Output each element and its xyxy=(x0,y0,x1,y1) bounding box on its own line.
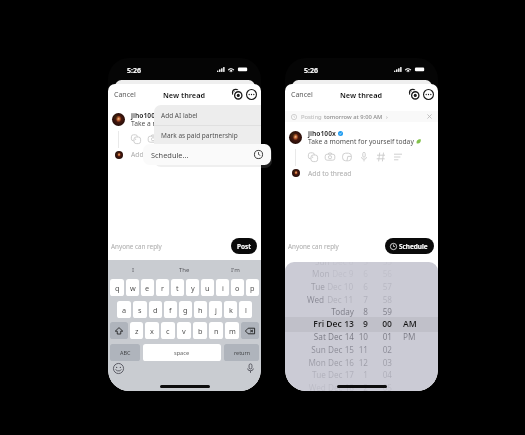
button[interactable]: Audience xyxy=(231,88,244,101)
button[interactable]: Add photo xyxy=(131,134,141,144)
button[interactable]: Mon Dec 16 xyxy=(285,356,438,368)
staticText: Dec 9 xyxy=(330,268,354,279)
button[interactable]: Fri Dec 13 xyxy=(285,318,438,330)
button[interactable]: w xyxy=(126,279,139,296)
button[interactable]: I xyxy=(108,260,159,279)
button[interactable]: Add AI label xyxy=(154,105,261,125)
staticText: e xyxy=(145,283,150,293)
staticText: New thread xyxy=(340,90,383,100)
button[interactable]: Backspace xyxy=(241,322,259,339)
button[interactable]: GIF xyxy=(342,152,352,162)
button[interactable]: i xyxy=(216,279,229,296)
button[interactable]: GIF xyxy=(165,134,175,144)
staticText: Mon Dec 16 xyxy=(285,357,354,368)
staticText: 10 xyxy=(285,331,368,342)
button[interactable]: Today xyxy=(285,305,438,317)
button[interactable]: Poll xyxy=(216,134,226,144)
button[interactable]: Tue xyxy=(285,280,438,292)
staticText: 5:26 xyxy=(304,66,318,76)
button[interactable]: Add tag xyxy=(199,134,209,144)
button[interactable]: Post xyxy=(231,238,257,254)
staticText: w xyxy=(130,283,136,293)
staticText: x xyxy=(150,326,154,336)
button[interactable]: m xyxy=(225,322,239,339)
button[interactable]: Voice note xyxy=(359,152,369,162)
button[interactable]: More options xyxy=(422,88,435,101)
staticText: The xyxy=(179,266,190,274)
button[interactable]: v xyxy=(177,322,191,339)
button[interactable]: Wed xyxy=(285,293,438,305)
staticText: 05 xyxy=(285,382,392,391)
button[interactable]: Emoji keyboard xyxy=(113,363,124,374)
staticText: Post xyxy=(237,242,251,251)
button[interactable]: l xyxy=(239,301,252,318)
staticText: h xyxy=(198,305,203,315)
button[interactable]: d xyxy=(149,301,162,318)
button[interactable]: Mark as paid partnership xyxy=(154,125,261,145)
button[interactable]: ABC xyxy=(110,344,140,361)
button[interactable]: Tue Dec 17 xyxy=(285,368,438,380)
button[interactable]: Dictation xyxy=(245,363,256,374)
button[interactable]: t xyxy=(171,279,184,296)
staticText: 6 xyxy=(285,281,368,292)
staticText: Dec 11 xyxy=(325,294,354,305)
button[interactable]: j xyxy=(209,301,222,318)
button[interactable]: n xyxy=(209,322,223,339)
button[interactable]: Cancel xyxy=(285,88,318,102)
button[interactable]: return xyxy=(224,344,259,361)
button[interactable]: Poll xyxy=(393,152,403,162)
staticText: s xyxy=(138,305,142,315)
staticText: t xyxy=(176,283,179,293)
button[interactable]: Dismiss schedule xyxy=(425,112,434,121)
button[interactable]: Shift xyxy=(110,322,128,339)
button[interactable]: x xyxy=(145,322,159,339)
staticText: AM xyxy=(403,318,417,330)
button[interactable]: h xyxy=(194,301,207,318)
button[interactable]: b xyxy=(193,322,207,339)
button[interactable]: I'm xyxy=(210,260,261,279)
staticText: y xyxy=(191,283,195,293)
staticText: 11 xyxy=(285,344,368,355)
button[interactable]: Wed Dec 18 xyxy=(285,381,438,391)
staticText: 8 xyxy=(285,306,368,317)
staticText: q xyxy=(115,283,120,293)
button[interactable]: Schedule xyxy=(385,238,434,254)
button[interactable]: y xyxy=(186,279,199,296)
button[interactable]: Add photo xyxy=(308,152,318,162)
button[interactable]: a xyxy=(117,301,131,318)
button[interactable]: c xyxy=(161,322,175,339)
button[interactable]: space xyxy=(143,344,221,361)
button[interactable]: Add tag xyxy=(376,152,386,162)
button[interactable]: Camera xyxy=(148,134,158,144)
staticText: Take a moment for yourself today xyxy=(308,137,414,146)
button[interactable]: Sun Dec 15 xyxy=(285,343,438,355)
button[interactable]: Sat Dec 14 xyxy=(285,330,438,342)
button[interactable]: q xyxy=(110,279,124,296)
button[interactable]: Camera xyxy=(325,152,335,162)
staticText: Fri Dec 13 xyxy=(285,318,354,330)
button[interactable]: Sun xyxy=(285,262,438,267)
staticText: Sun Dec 15 xyxy=(285,344,354,355)
button[interactable]: k xyxy=(224,301,237,318)
button[interactable]: s xyxy=(133,301,147,318)
button[interactable]: Mon xyxy=(285,267,438,279)
staticText: Dec 10 xyxy=(325,281,354,292)
button[interactable]: u xyxy=(201,279,214,296)
staticText: 57 xyxy=(285,281,392,292)
staticText: v xyxy=(182,326,186,336)
button[interactable]: o xyxy=(231,279,244,296)
button[interactable]: r xyxy=(156,279,169,296)
button[interactable]: Cancel xyxy=(108,88,141,102)
button[interactable]: Voice note xyxy=(182,134,192,144)
button[interactable]: z xyxy=(130,322,143,339)
button[interactable]: More options xyxy=(245,88,258,101)
button[interactable]: The xyxy=(159,260,210,279)
button[interactable]: f xyxy=(164,301,177,318)
staticText: Take a moment for yourself today xyxy=(131,119,237,128)
button[interactable]: e xyxy=(141,279,154,296)
button[interactable]: Schedule... xyxy=(143,144,271,165)
button[interactable]: g xyxy=(179,301,192,318)
staticText: 9 xyxy=(285,318,368,330)
button[interactable]: Audience xyxy=(408,88,421,101)
button[interactable]: p xyxy=(246,279,259,296)
